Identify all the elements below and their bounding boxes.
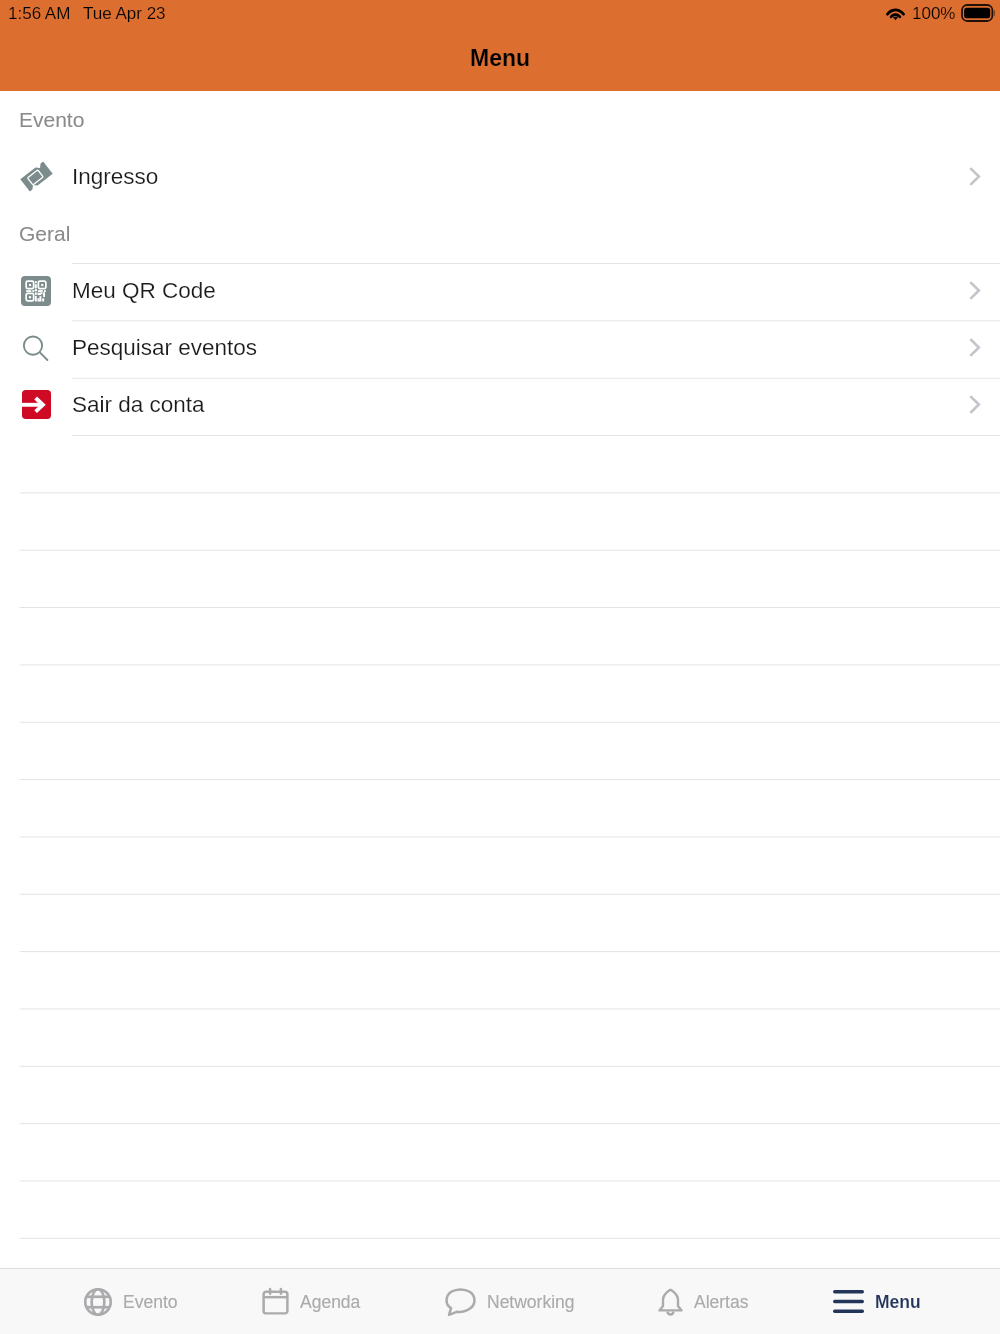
- button[interactable]: Evento: [79, 1269, 178, 1334]
- staticText: Tue Apr 23: [83, 4, 166, 23]
- staticText: Alertas: [694, 1292, 749, 1312]
- staticText: 100%: [912, 4, 956, 23]
- button[interactable]: Ingresso: [0, 148, 1000, 205]
- staticText: Menu: [470, 45, 531, 71]
- staticText: Geral: [19, 222, 71, 245]
- button[interactable]: Alertas: [653, 1269, 749, 1334]
- staticText: Ingresso: [72, 164, 159, 189]
- button[interactable]: Menu: [828, 1269, 921, 1334]
- staticText: 1:56 AM: [8, 4, 71, 23]
- staticText: Evento: [19, 108, 85, 131]
- button[interactable]: Agenda: [257, 1269, 361, 1334]
- button[interactable]: Pesquisar eventos: [0, 319, 1000, 376]
- staticText: Evento: [123, 1292, 178, 1312]
- staticText: Sair da conta: [72, 392, 205, 417]
- button[interactable]: Meu QR Code: [0, 262, 1000, 319]
- staticText: Pesquisar eventos: [72, 335, 258, 360]
- staticText: Agenda: [300, 1292, 361, 1312]
- staticText: Networking: [487, 1292, 575, 1312]
- staticText: Meu QR Code: [72, 278, 216, 303]
- staticText: Menu: [875, 1292, 921, 1312]
- button[interactable]: Sair da conta: [0, 376, 1000, 433]
- button[interactable]: Networking: [440, 1269, 575, 1334]
